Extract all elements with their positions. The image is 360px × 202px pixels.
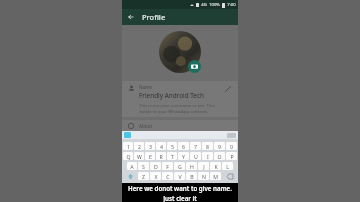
staticText: 7:00 [227,2,236,8]
button[interactable]: X [150,172,161,180]
staticText: T [171,153,174,160]
staticText: G [178,163,182,170]
button[interactable]: Profile photo [159,31,201,73]
button[interactable]: Shift [123,172,137,180]
button[interactable]: L [222,162,233,170]
staticText: I [207,153,209,160]
button[interactable]: K [210,162,221,170]
button[interactable]: 1 [123,142,133,150]
button[interactable]: D [150,162,161,170]
staticText: Friendly Android Tech [139,91,204,100]
button[interactable]: 3 [145,142,155,150]
staticText: 8 [206,143,209,150]
staticText: This is not your username or pin. This n… [139,102,223,108]
button[interactable]: Q [123,152,133,160]
button[interactable]: Z [138,172,149,180]
button[interactable]: Backspace [222,172,237,180]
staticText: 1 [127,143,130,150]
button[interactable]: Y [178,152,189,160]
button[interactable]: I [202,152,213,160]
staticText: J [203,163,205,170]
staticText: 0 [230,143,233,150]
staticText: R [159,153,163,160]
staticText: U [194,153,198,160]
button[interactable]: 0 [226,142,237,150]
staticText: N [202,173,206,180]
button[interactable]: J [198,162,209,170]
button[interactable]: P [226,152,237,160]
button[interactable]: 9 [214,142,225,150]
staticText: B [190,173,194,180]
staticText: 7 [194,143,197,150]
staticText: P [230,153,234,160]
button[interactable]: O [214,152,225,160]
button[interactable]: C [162,172,173,180]
button[interactable]: About [122,120,238,131]
button[interactable]: A [127,162,137,170]
button[interactable]: B [186,172,197,180]
staticText: Just clear it [163,194,197,202]
button[interactable]: 4 [156,142,166,150]
staticText: 2 [138,143,141,150]
staticText: Z [142,173,145,180]
staticText: X [154,173,158,180]
staticText: A [130,163,134,170]
button[interactable]: T [167,152,177,160]
staticText: L [226,163,229,170]
button[interactable]: 2 [134,142,144,150]
staticText: Here we donot want to give name. [128,184,232,192]
staticText: Name [139,84,152,90]
staticText: 6 [182,143,185,150]
button[interactable]: H [186,162,197,170]
staticText: K [214,163,218,170]
button[interactable]: N [198,172,209,180]
staticText: V [178,173,182,180]
button[interactable]: F [162,162,173,170]
staticText: F [166,163,169,170]
staticText: O [217,153,222,160]
staticText: 3 [149,143,152,150]
button[interactable]: R [156,152,166,160]
staticText: Profile [142,12,166,22]
staticText: W [137,153,142,160]
button[interactable]: Edit name [223,84,233,94]
staticText: Q [126,153,131,160]
button[interactable]: W [134,152,144,160]
staticText: C [166,173,170,180]
button[interactable]: Back [125,11,137,23]
button[interactable]: Name [122,81,238,117]
button[interactable]: 7 [190,142,201,150]
staticText: 4 [160,143,163,150]
staticText: H [190,163,194,170]
button[interactable]: S [138,162,149,170]
button[interactable]: Emoji [124,132,131,138]
button[interactable]: 8 [202,142,213,150]
staticText: 9 [218,143,221,150]
staticText: E [149,153,152,160]
staticText: D [154,163,158,170]
staticText: visible to your WhatsApp contacts. [139,108,209,114]
staticText: 4G [201,2,207,8]
button[interactable]: G [174,162,185,170]
button[interactable]: M [210,172,221,180]
staticText: M [213,173,218,180]
button[interactable]: 6 [178,142,189,150]
button[interactable]: E [145,152,155,160]
button[interactable]: Change photo [188,60,201,73]
button[interactable]: U [190,152,201,160]
button[interactable]: V [174,172,185,180]
button[interactable]: 5 [167,142,177,150]
staticText: Y [182,153,185,160]
staticText: 5 [171,143,174,150]
staticText: About [139,123,153,129]
staticText: 100% [209,2,220,8]
staticText: S [142,163,145,170]
